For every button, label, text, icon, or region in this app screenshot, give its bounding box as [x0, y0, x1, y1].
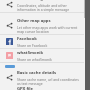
- staticText: Let other map apps work with current map…: [17, 25, 81, 34]
- button[interactable]: Share text message: [0, 0, 84, 12]
- staticText: Other map apps: [17, 18, 51, 24]
- button[interactable]: Selected app: [5, 65, 15, 68]
- other: Other map apps: [6, 22, 13, 29]
- button[interactable]: GPX file: [0, 86, 84, 90]
- staticText: Share on Facebook: [17, 43, 48, 48]
- staticText: GPX file: [17, 86, 34, 90]
- other: Facebook: [6, 38, 13, 45]
- button[interactable]: Facebook: [0, 35, 84, 48]
- other: Basic cache details: [6, 74, 13, 81]
- staticText: Facebook: [17, 36, 37, 42]
- button[interactable]: whatSmonik: [0, 49, 84, 62]
- other: whatSmonik: [6, 52, 13, 59]
- staticText: Basic cache details: [17, 70, 57, 76]
- other: Share text message: [6, 1, 13, 8]
- staticText: Text message: [17, 0, 46, 2]
- staticText: Share on whatSmonik: [17, 57, 52, 62]
- staticText: whatSmonik: [17, 50, 44, 56]
- staticText: Share cache name, url and coordinates as…: [17, 77, 81, 86]
- button[interactable]: Other map apps: [0, 17, 84, 34]
- staticText: Coordinates, altitude and other informat…: [17, 3, 81, 12]
- button[interactable]: Basic cache details: [0, 69, 84, 86]
